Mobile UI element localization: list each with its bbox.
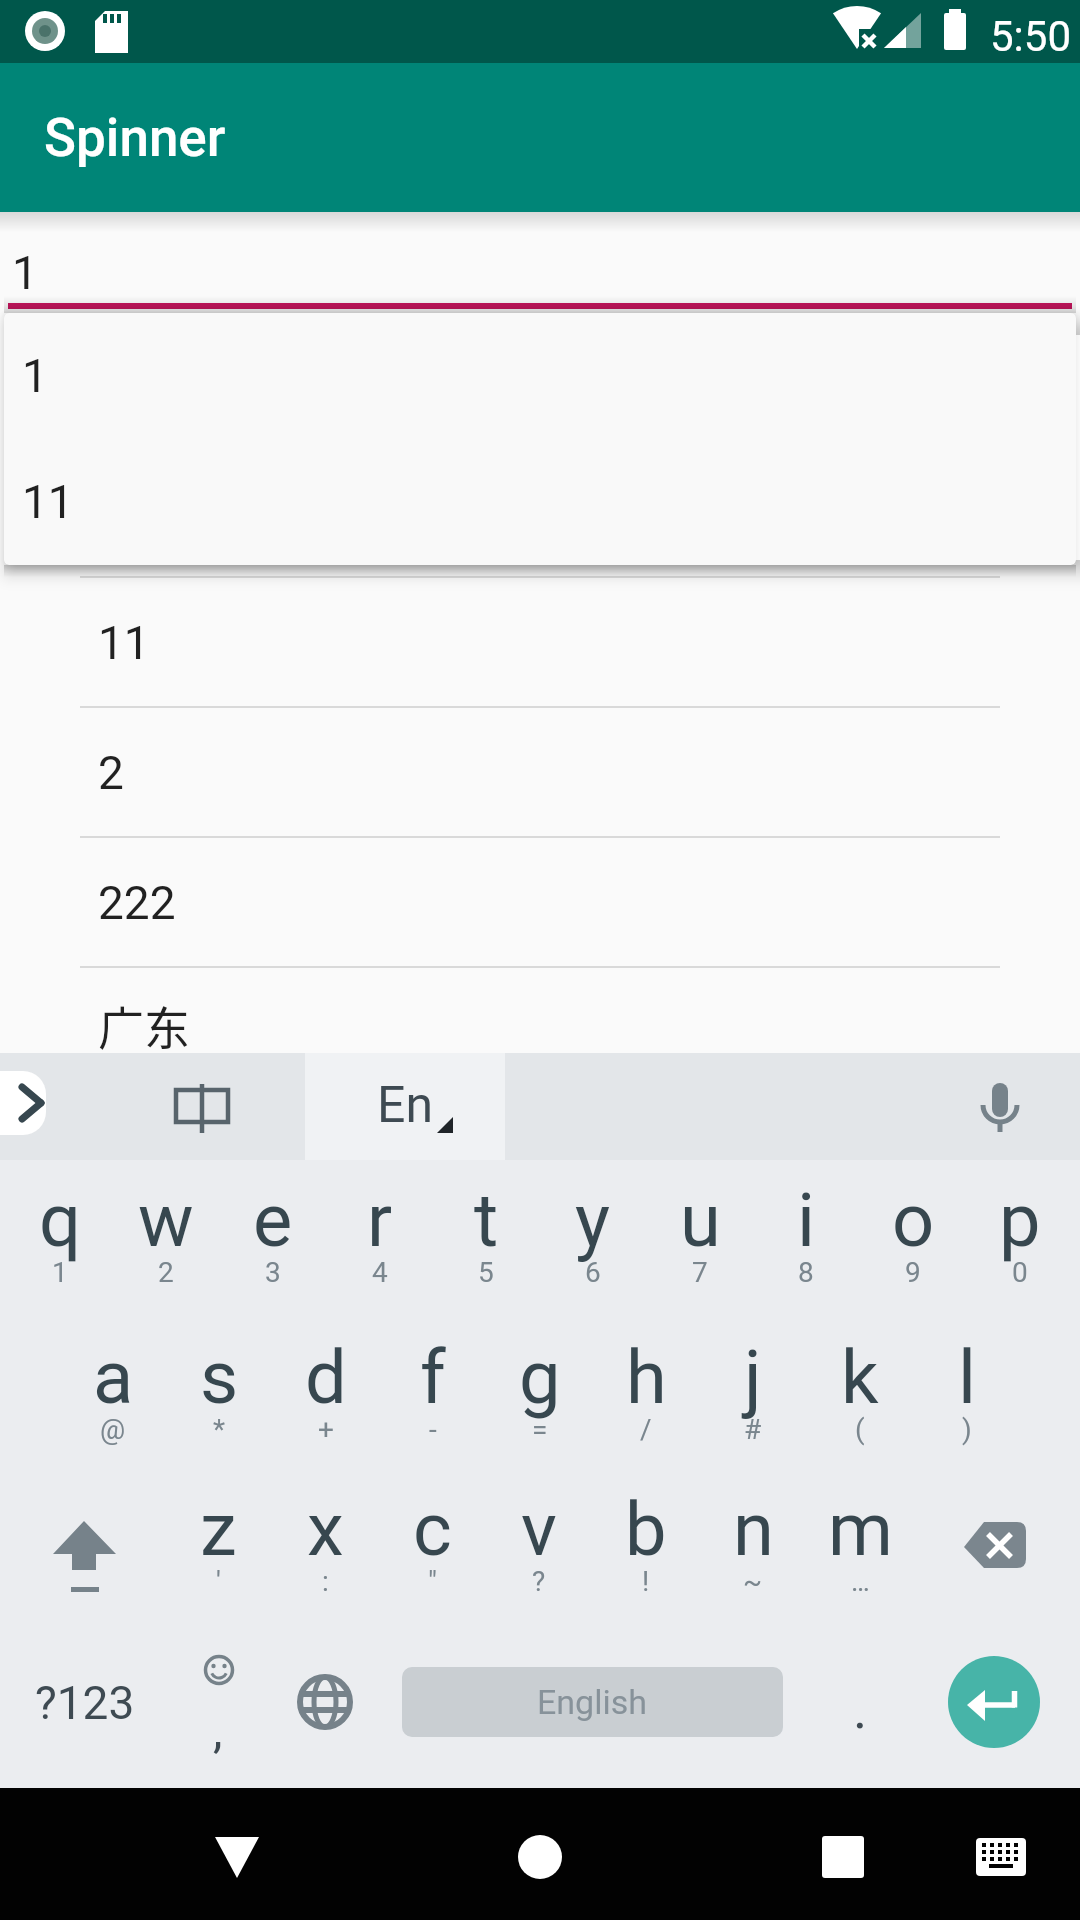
button[interactable]	[120, 1050, 280, 1160]
staticText: r	[367, 1177, 393, 1264]
button[interactable]: 11	[0, 578, 1080, 708]
staticText: (	[855, 1413, 865, 1446]
staticText: b	[625, 1486, 667, 1573]
staticText: y	[575, 1177, 611, 1264]
button[interactable]: y	[540, 1160, 646, 1317]
staticText: -	[429, 1413, 437, 1446]
staticText: English	[537, 1682, 648, 1722]
staticText: 5	[478, 1256, 494, 1289]
staticText: "	[428, 1565, 437, 1598]
staticText: 广东	[98, 992, 190, 1059]
button[interactable]: ?123	[31, 1631, 139, 1774]
button[interactable]: 2	[0, 708, 1080, 838]
staticText: g	[519, 1334, 561, 1421]
button[interactable]	[167, 1788, 307, 1920]
button[interactable]: .	[806, 1631, 914, 1788]
button[interactable]	[0, 1071, 46, 1135]
button[interactable]: English	[402, 1667, 783, 1737]
button[interactable]: q	[7, 1160, 113, 1317]
staticText: o	[892, 1177, 935, 1264]
staticText: @	[100, 1413, 126, 1446]
button[interactable]: u	[647, 1160, 753, 1317]
staticText: 222	[98, 876, 176, 930]
staticText: j	[744, 1334, 762, 1421]
staticText: f	[420, 1334, 446, 1421]
staticText: :	[322, 1565, 329, 1598]
staticText: 0	[1012, 1256, 1028, 1289]
button[interactable]: s	[166, 1317, 272, 1474]
staticText: 5:50	[990, 12, 1071, 61]
staticText: +	[318, 1413, 334, 1446]
staticText: ?123	[35, 1676, 135, 1730]
button[interactable]	[271, 1631, 379, 1788]
button[interactable]	[305, 1053, 505, 1160]
staticText: 8	[798, 1256, 814, 1289]
button[interactable]: m	[807, 1469, 913, 1626]
staticText: /	[640, 1413, 652, 1446]
button[interactable]: e	[220, 1160, 326, 1317]
staticText: 3	[265, 1256, 281, 1289]
button[interactable]: x	[272, 1469, 378, 1626]
staticText: =	[532, 1413, 548, 1446]
staticText: m	[828, 1486, 893, 1573]
button[interactable]	[930, 1474, 1070, 1631]
button[interactable]: c	[379, 1469, 485, 1626]
staticText: q	[39, 1177, 82, 1264]
staticText: t	[474, 1177, 499, 1264]
staticText: d	[305, 1334, 347, 1421]
staticText: s	[200, 1334, 239, 1421]
staticText: v	[521, 1486, 557, 1573]
button[interactable]: t	[433, 1160, 539, 1317]
staticText: En	[377, 1076, 434, 1135]
button[interactable]: n	[700, 1469, 806, 1626]
button[interactable]: v	[486, 1469, 592, 1626]
staticText: c	[413, 1486, 452, 1573]
button[interactable]: b	[593, 1469, 699, 1626]
button[interactable]: 广东	[0, 968, 1080, 1098]
button[interactable]	[773, 1788, 913, 1920]
staticText: 7	[692, 1256, 708, 1289]
button[interactable]: 222	[0, 838, 1080, 968]
staticText: Spinner	[44, 107, 226, 169]
staticText: a	[93, 1334, 134, 1421]
button[interactable]: z	[165, 1469, 271, 1626]
staticText: 4	[372, 1256, 388, 1289]
button[interactable]	[940, 1050, 1060, 1160]
button[interactable]	[948, 1656, 1040, 1748]
staticText: *	[213, 1413, 226, 1446]
button[interactable]	[20, 1474, 160, 1631]
button[interactable]	[940, 1788, 1060, 1920]
button[interactable]: f	[380, 1317, 486, 1474]
staticText: !	[642, 1565, 650, 1598]
button[interactable]: j	[700, 1317, 806, 1474]
button[interactable]: i	[753, 1160, 859, 1317]
staticText: i	[797, 1177, 815, 1264]
button[interactable]: 1	[4, 313, 1076, 439]
button[interactable]: r	[327, 1160, 433, 1317]
button[interactable]: l	[914, 1317, 1020, 1474]
button[interactable]: k	[807, 1317, 913, 1474]
button[interactable]	[470, 1788, 610, 1920]
button[interactable]: w	[113, 1160, 219, 1317]
button[interactable]: 11	[4, 439, 1076, 565]
staticText: 1	[22, 349, 48, 403]
staticText: .	[853, 1678, 868, 1741]
button[interactable]: 1	[0, 448, 1080, 578]
button[interactable]: h	[593, 1317, 699, 1474]
staticText: 6	[585, 1256, 601, 1289]
staticText: 11	[98, 616, 150, 670]
staticText: #	[744, 1413, 762, 1446]
staticText: ,	[213, 1702, 223, 1758]
staticText: 9	[905, 1256, 921, 1289]
button[interactable]: 1	[0, 227, 1080, 319]
button[interactable]: ,	[164, 1631, 272, 1788]
button[interactable]: a	[60, 1317, 166, 1474]
button[interactable]: p	[967, 1160, 1073, 1317]
button[interactable]: d	[273, 1317, 379, 1474]
button[interactable]: g	[487, 1317, 593, 1474]
staticText: 1	[52, 1256, 68, 1289]
staticText: w	[138, 1177, 194, 1264]
staticText: z	[200, 1486, 237, 1573]
button[interactable]: o	[860, 1160, 966, 1317]
